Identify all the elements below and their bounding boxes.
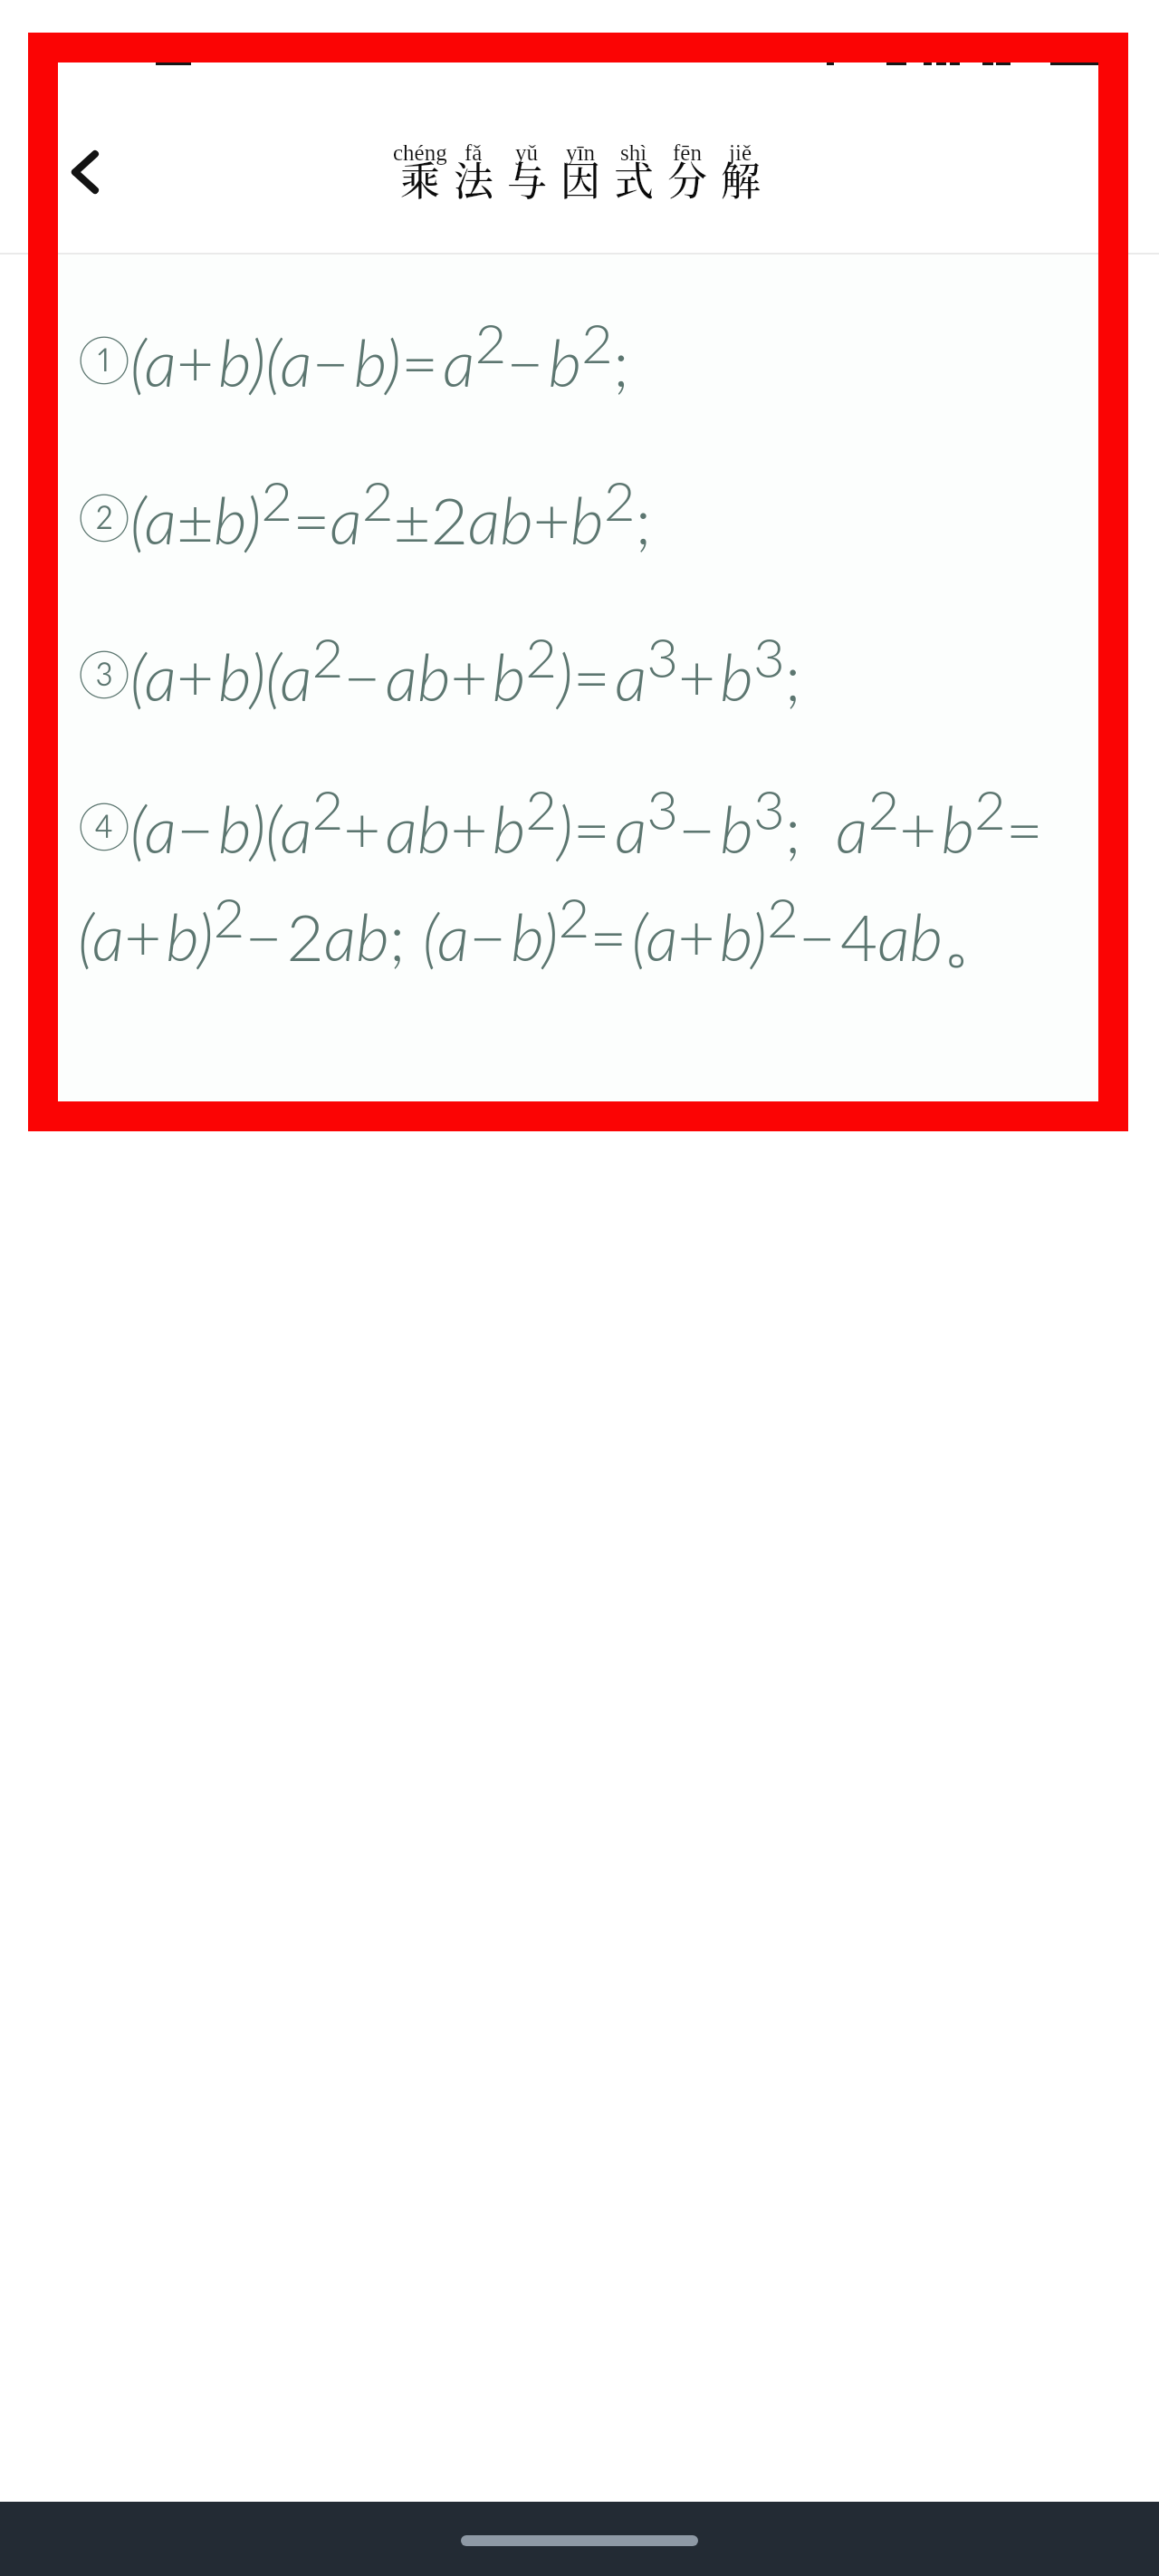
staticText: ①(a+b)(a−b)=a2−b2; bbox=[78, 310, 629, 400]
staticText: 乘 bbox=[400, 149, 440, 207]
staticText: fēn bbox=[673, 140, 702, 166]
staticText: yīn bbox=[566, 140, 595, 166]
staticText: ④(a−b)(a2+ab+b2)=a3−b3; a2+b2= bbox=[78, 776, 1049, 867]
staticText: 解 bbox=[721, 149, 761, 207]
staticText: fǎ bbox=[465, 140, 483, 166]
staticText: ③(a+b)(a2−ab+b2)=a3+b3; bbox=[78, 624, 801, 715]
staticText: 分 bbox=[667, 149, 707, 207]
staticText: yǔ bbox=[515, 140, 538, 166]
staticText: ②(a±b)2=a2±2ab+b2; bbox=[78, 467, 652, 558]
staticText: shì bbox=[620, 140, 647, 166]
staticText: 法 bbox=[454, 149, 493, 207]
staticText: 与 bbox=[507, 149, 547, 207]
button[interactable]: Back bbox=[42, 129, 129, 216]
staticText: (a+b)2−2ab; (a−b)2=(a+b)2−4ab。 bbox=[78, 884, 1008, 980]
staticText: 式 bbox=[614, 149, 654, 207]
staticText: 因 bbox=[560, 149, 600, 207]
staticText: jiě bbox=[729, 140, 752, 166]
staticText: chéng bbox=[393, 140, 446, 166]
